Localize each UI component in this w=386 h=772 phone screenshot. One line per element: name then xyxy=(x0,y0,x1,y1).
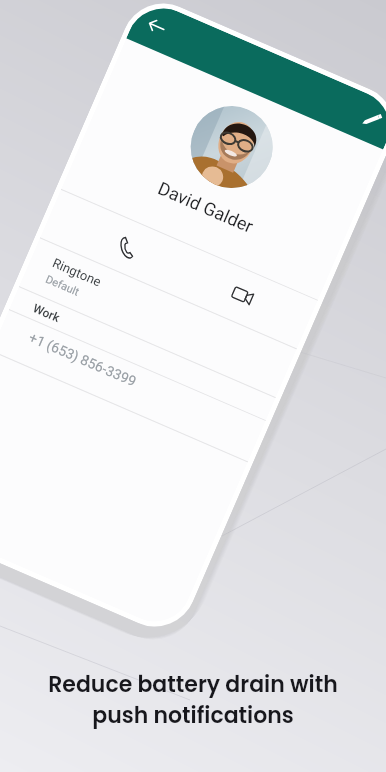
staticText: Default xyxy=(44,273,82,299)
button[interactable]: Edit xyxy=(356,104,386,135)
staticText: +1 (653) 856-3399 xyxy=(27,329,139,389)
staticText: Reduce battery drain with push notificat… xyxy=(0,669,386,730)
staticText: Work xyxy=(31,301,62,325)
staticText: David Galder xyxy=(73,142,338,272)
button[interactable]: Back xyxy=(141,10,172,42)
button[interactable]: Call xyxy=(110,231,144,265)
button[interactable]: Video call xyxy=(225,278,260,313)
staticText: Ringtone xyxy=(50,255,104,290)
